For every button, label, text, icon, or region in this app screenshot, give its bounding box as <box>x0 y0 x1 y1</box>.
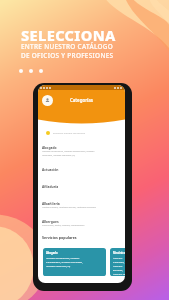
button[interactable]: Abogado <box>43 248 106 276</box>
button[interactable]: Albañilería <box>42 201 122 209</box>
button[interactable]: Actuación <box>42 167 122 171</box>
staticText: Afiladuría <box>42 184 59 188</box>
button[interactable]: Afiladuría <box>42 184 122 188</box>
button[interactable]: Escriba el nombre del servicio <box>42 127 123 138</box>
staticText: Escriba el nombre del servicio <box>53 132 86 135</box>
staticText: Mecánico <box>113 251 125 255</box>
staticText: Abogado <box>42 145 57 149</box>
staticText: ENTRE NUESTRO CATÁLOGO DE OFICIOS Y PROF… <box>21 42 114 60</box>
button[interactable]: Albergues <box>42 219 122 227</box>
button[interactable]: Mecánico <box>110 248 125 276</box>
button[interactable]: Perfil <box>42 95 53 106</box>
staticText: Albañilería <box>42 201 60 205</box>
button[interactable]: Abogado <box>42 145 122 156</box>
staticText: Albañilería simple, Albañilería armada, … <box>42 206 96 209</box>
staticText: Servicios populares <box>42 235 77 240</box>
staticText: Actuación <box>42 167 59 171</box>
staticText: Construcción, Diseño, Limpieza, Mantenim… <box>42 224 85 227</box>
staticText: Mecánico automotriz, Mecánico industrial… <box>113 257 125 276</box>
staticText: Abogado <box>46 251 58 255</box>
staticText: Categorías <box>38 97 125 103</box>
staticText: Abogado constitucional, Abogado administ… <box>46 257 83 267</box>
staticText: SELECCIONA <box>21 25 116 45</box>
staticText: Albergues <box>42 219 59 223</box>
staticText: Abogado constitucional, Abogado administ… <box>42 150 95 156</box>
